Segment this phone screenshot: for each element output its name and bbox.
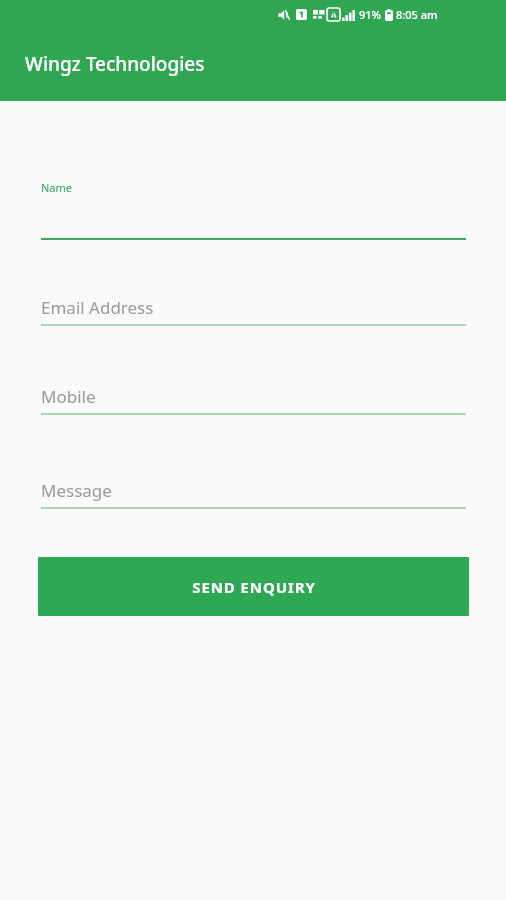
- button[interactable]: SEND ENQUIRY: [38, 557, 469, 616]
- button[interactable]: Email Address: [41, 286, 466, 326]
- other: Signal strength: [342, 9, 355, 21]
- staticText: Wingz Technologies: [25, 51, 205, 77]
- staticText: 8:05 am: [396, 7, 438, 22]
- staticText: Mobile: [41, 385, 96, 408]
- staticText: 91%: [359, 7, 381, 22]
- other: Mobile data: [327, 8, 340, 21]
- other: Sound off: [278, 9, 290, 21]
- other: SIM 1: [296, 9, 307, 20]
- other: 4G: [313, 9, 325, 21]
- button[interactable]: Name: [41, 176, 466, 240]
- staticText: Email Address: [41, 296, 154, 319]
- button[interactable]: Mobile: [41, 375, 466, 415]
- button[interactable]: Message: [41, 469, 466, 509]
- staticText: Name: [41, 180, 73, 195]
- staticText: SEND ENQUIRY: [192, 577, 316, 597]
- other: Battery 91 percent: [385, 9, 393, 21]
- staticText: Message: [41, 479, 112, 502]
